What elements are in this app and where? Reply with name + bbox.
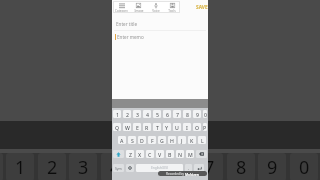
staticText: P <box>203 124 207 131</box>
staticText: 4 <box>146 111 149 118</box>
staticText: Tools <box>168 9 176 13</box>
button[interactable]: L <box>198 136 206 144</box>
staticText: B <box>168 151 172 158</box>
staticText: O <box>195 124 200 131</box>
button[interactable]: 3 <box>133 110 141 118</box>
staticText: J <box>181 137 183 144</box>
staticText: Voice <box>152 9 160 13</box>
button[interactable]: Q <box>113 123 121 131</box>
staticText: U <box>175 124 179 131</box>
staticText: 2 <box>47 155 58 180</box>
button[interactable]: U <box>173 123 181 131</box>
button[interactable]: 8 <box>183 110 191 118</box>
button[interactable]: 4 <box>143 110 151 118</box>
button[interactable]: 2 <box>123 110 131 118</box>
staticText: 0 <box>299 155 310 180</box>
button[interactable]: D <box>138 136 146 144</box>
button[interactable]: K <box>188 136 196 144</box>
staticText: 8 <box>236 155 247 180</box>
staticText: M <box>188 151 193 158</box>
staticText: E <box>136 124 139 131</box>
staticText: X <box>138 151 142 158</box>
staticText: 3 <box>136 111 139 118</box>
staticText: T <box>156 124 159 131</box>
button[interactable]: V <box>156 150 164 158</box>
staticText: S <box>131 137 134 144</box>
button[interactable]: 9 <box>193 110 201 118</box>
button[interactable]: Shift <box>113 150 124 158</box>
button[interactable]: R <box>143 123 151 131</box>
staticText: C <box>148 151 152 158</box>
button[interactable]: X <box>136 150 144 158</box>
button[interactable]: Symbols <box>113 164 124 172</box>
staticText: A <box>120 137 124 144</box>
staticText: V <box>158 151 162 158</box>
button[interactable]: Category <box>113 1 130 13</box>
button[interactable]: Z <box>126 150 134 158</box>
button[interactable]: Y <box>163 123 171 131</box>
staticText: 8 <box>186 111 189 118</box>
button[interactable]: Voice <box>147 1 164 13</box>
button[interactable]: SAVE <box>196 4 208 11</box>
button[interactable]: B <box>166 150 174 158</box>
staticText: F <box>151 137 154 144</box>
button[interactable]: N <box>176 150 184 158</box>
staticText: 3 <box>78 155 89 180</box>
staticText: 6 <box>166 111 169 118</box>
button[interactable]: Tools <box>164 1 180 13</box>
staticText: Image <box>134 9 144 13</box>
staticText: Enter memo <box>117 34 144 40</box>
staticText: 5 <box>141 155 152 180</box>
button[interactable]: M <box>186 150 194 158</box>
staticText: 6 <box>173 155 184 180</box>
button[interactable]: W <box>123 123 131 131</box>
staticText: W <box>125 124 130 131</box>
staticText: 7 <box>176 111 179 118</box>
staticText: R <box>145 124 149 131</box>
button[interactable]: E <box>133 123 141 131</box>
staticText: 7 <box>204 155 215 180</box>
button[interactable]: 1 <box>113 110 121 118</box>
staticText: Sym <box>115 166 122 171</box>
button[interactable]: Image <box>130 1 147 13</box>
button[interactable]: F <box>148 136 156 144</box>
button[interactable]: C <box>146 150 154 158</box>
staticText: Z <box>129 151 132 158</box>
button[interactable]: 6 <box>163 110 171 118</box>
button[interactable]: P <box>203 123 207 131</box>
staticText: 4 <box>110 155 121 180</box>
staticText: 0 <box>204 111 207 118</box>
button[interactable]: A <box>118 136 126 144</box>
staticText: 1 <box>116 111 119 118</box>
staticText: Q <box>115 124 120 131</box>
staticText: 9 <box>196 111 199 118</box>
staticText: English(US) <box>151 166 168 170</box>
button[interactable]: O <box>193 123 201 131</box>
staticText: N <box>178 151 183 158</box>
button[interactable]: Period <box>185 164 192 172</box>
staticText: Y <box>165 124 169 131</box>
staticText: Mobizen <box>185 172 199 176</box>
button[interactable]: H <box>168 136 176 144</box>
button[interactable]: S <box>128 136 136 144</box>
staticText: L <box>201 137 204 144</box>
staticText: Category <box>115 9 128 13</box>
button[interactable]: Settings <box>126 164 134 172</box>
button[interactable]: T <box>153 123 161 131</box>
staticText: K <box>190 137 194 144</box>
button[interactable]: 5 <box>153 110 161 118</box>
button[interactable]: Backspace <box>196 150 207 158</box>
staticText: . <box>188 165 190 171</box>
button[interactable]: 7 <box>173 110 181 118</box>
button[interactable]: J <box>178 136 186 144</box>
button[interactable]: 0 <box>203 110 207 118</box>
staticText: Recorded by <box>166 172 185 176</box>
button[interactable]: Enter <box>194 164 204 172</box>
staticText: 5 <box>156 111 159 118</box>
button[interactable]: G <box>158 136 166 144</box>
staticText: Enter title <box>116 21 138 27</box>
button[interactable]: I <box>183 123 191 131</box>
button[interactable]: Space <box>136 164 183 172</box>
staticText: I <box>186 124 188 131</box>
staticText: 2 <box>126 111 129 118</box>
